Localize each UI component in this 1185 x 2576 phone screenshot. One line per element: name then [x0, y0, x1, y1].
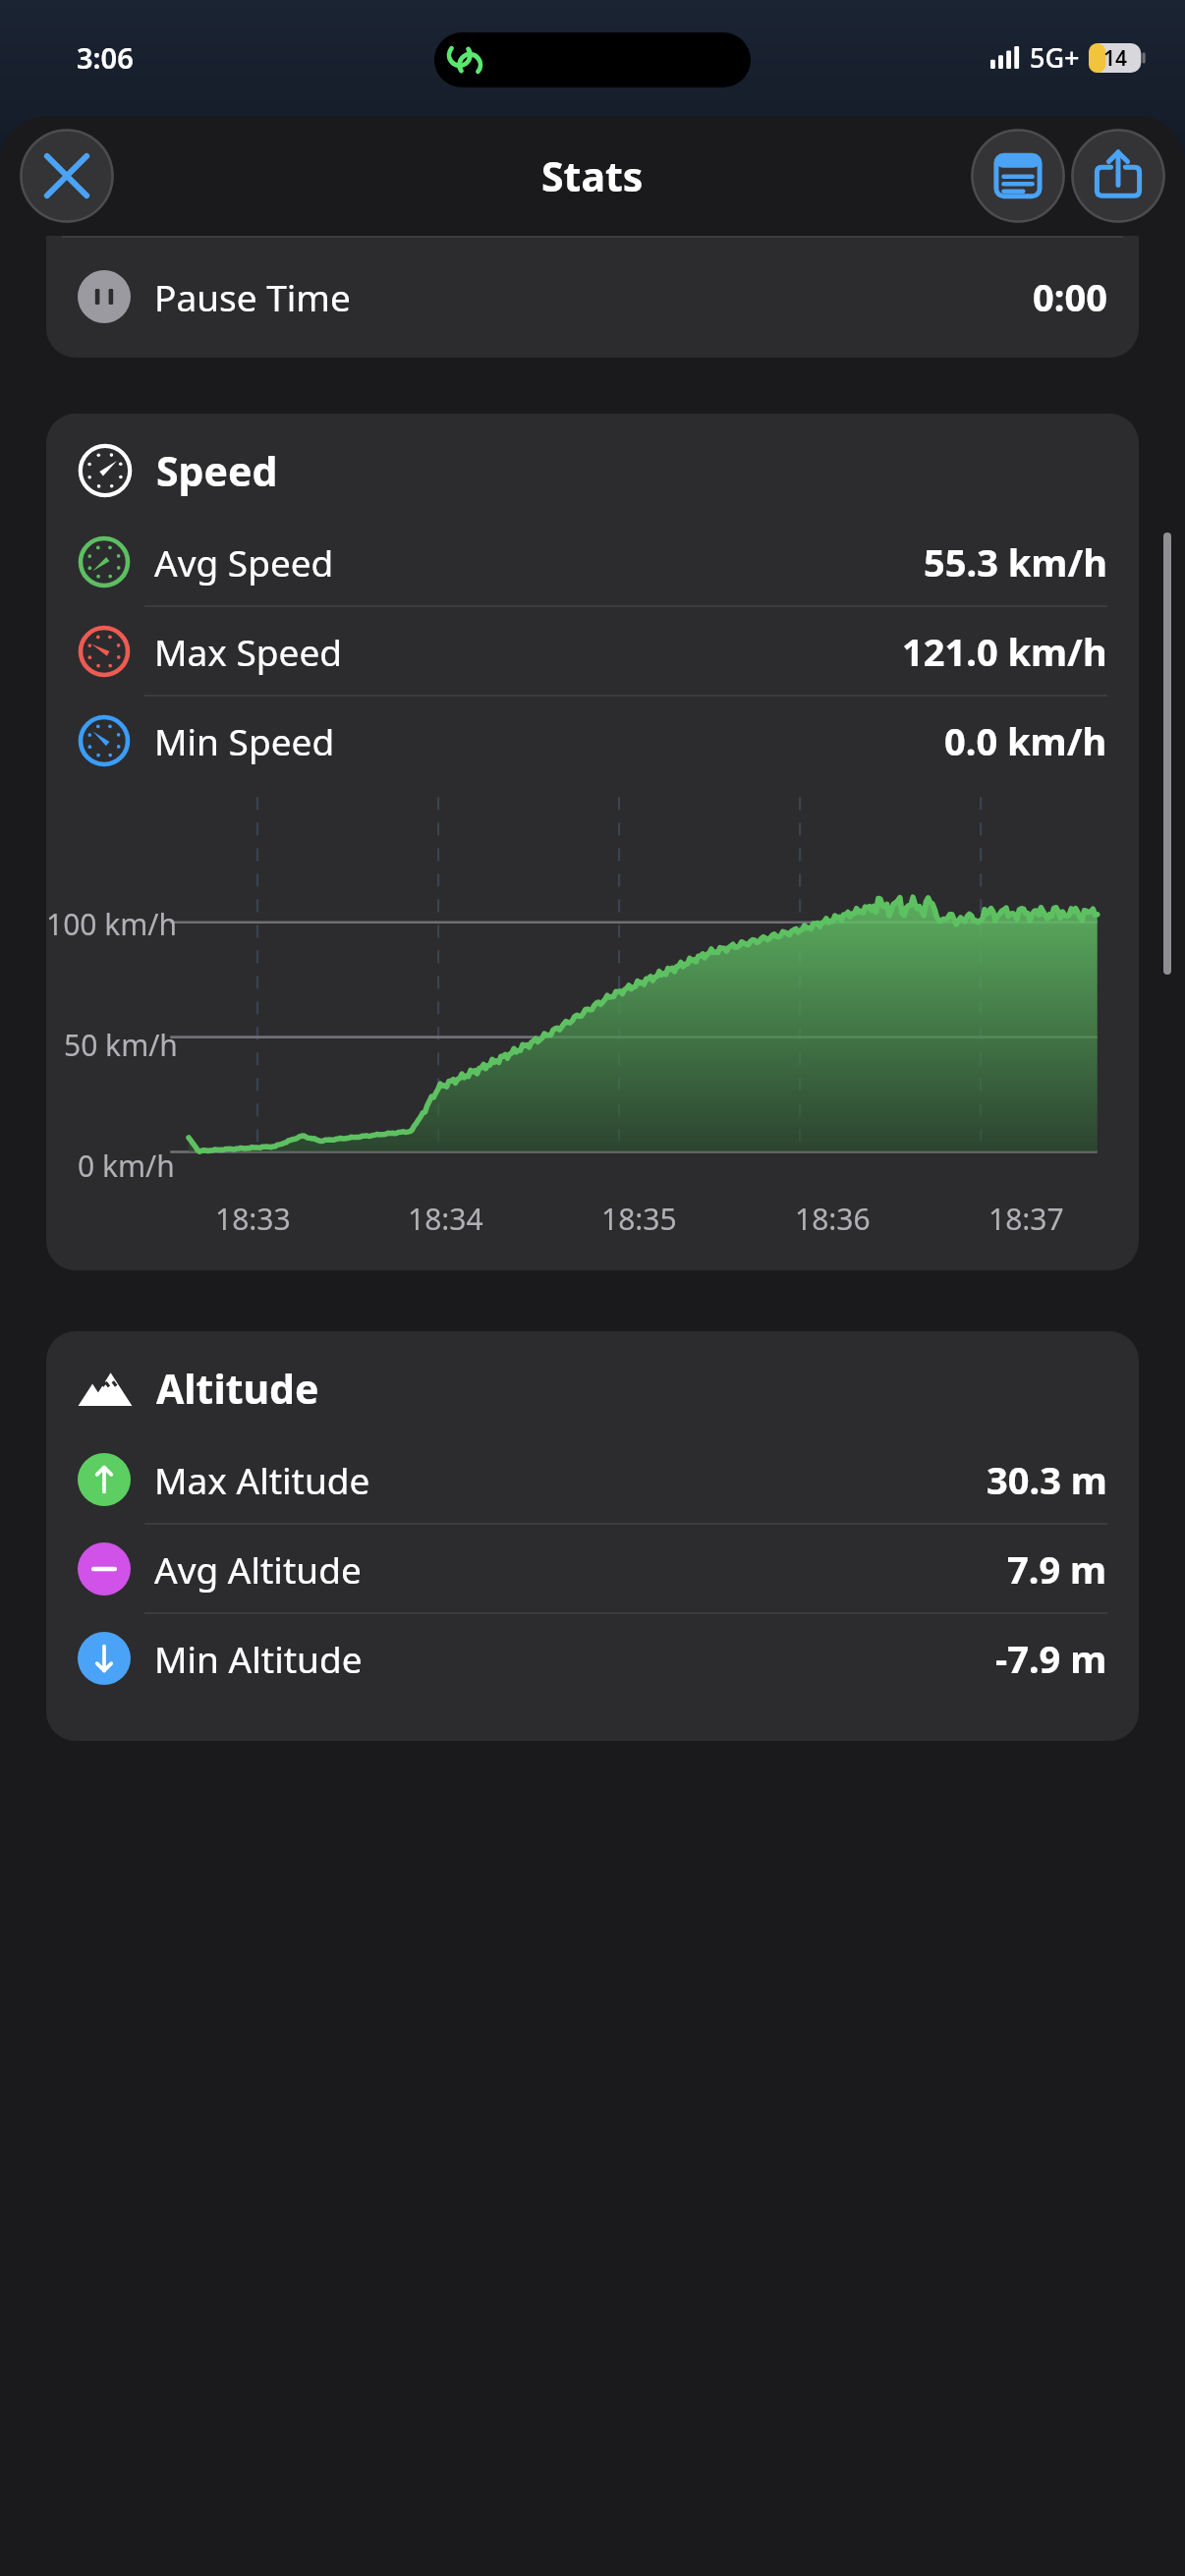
button[interactable]: Close [20, 129, 114, 223]
button[interactable]: Avg Speed [46, 518, 1139, 605]
staticText: Avg Speed [154, 537, 334, 587]
staticText: 7.9 m [1007, 1543, 1107, 1595]
button[interactable]: Pause Time [46, 236, 1139, 358]
staticText: Pause Time [154, 272, 351, 321]
staticText: 30.3 m [987, 1454, 1107, 1505]
staticText: Min Speed [154, 716, 335, 765]
staticText: Max Speed [154, 627, 343, 676]
staticText: 0:00 [1033, 271, 1107, 322]
button[interactable]: Avg Altitude [46, 1525, 1139, 1612]
staticText: Min Altitude [154, 1634, 363, 1683]
staticText: 18:37 [988, 1199, 1064, 1239]
button[interactable]: Min Speed [46, 697, 1139, 784]
button[interactable]: Min Altitude [46, 1614, 1139, 1702]
staticText: 18:36 [795, 1199, 871, 1239]
staticText: 14 [1103, 44, 1128, 73]
staticText: -7.9 m [995, 1633, 1107, 1684]
staticText: 18:35 [601, 1199, 677, 1239]
button[interactable]: Max Speed [46, 607, 1139, 695]
staticText: 18:34 [408, 1199, 483, 1239]
staticText: Speed [156, 443, 278, 498]
staticText: 0.0 km/h [944, 715, 1107, 766]
staticText: 5G+ [1030, 39, 1080, 76]
staticText: 50 km/h [64, 1025, 178, 1065]
staticText: 55.3 km/h [924, 536, 1107, 588]
staticText: 100 km/h [46, 904, 178, 944]
staticText: 0 km/h [78, 1146, 175, 1186]
staticText: 18:33 [215, 1199, 291, 1239]
staticText: 121.0 km/h [902, 626, 1107, 677]
staticText: Max Altitude [154, 1455, 370, 1504]
button[interactable]: Max Altitude [46, 1435, 1139, 1523]
button[interactable]: Share [1071, 129, 1165, 223]
staticText: 3:06 [77, 38, 134, 77]
staticText: Altitude [156, 1361, 319, 1416]
staticText: Stats [541, 148, 644, 203]
staticText: Avg Altitude [154, 1544, 362, 1594]
button[interactable]: Notes [971, 129, 1065, 223]
